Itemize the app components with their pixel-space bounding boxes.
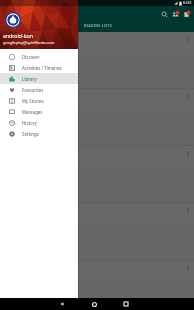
button[interactable]: Recent apps <box>120 298 132 310</box>
button[interactable] <box>0 146 194 203</box>
staticText: READING LISTS <box>84 23 112 28</box>
button[interactable] <box>0 32 194 89</box>
button[interactable]: History <box>0 117 78 128</box>
staticText: Activities / Timeline <box>22 65 62 71</box>
button[interactable]: Notifications <box>181 9 192 20</box>
staticText: Library <box>22 76 37 82</box>
button[interactable] <box>0 260 194 310</box>
staticText: History <box>22 120 37 126</box>
button[interactable]: Settings <box>0 128 78 139</box>
button[interactable]: Activities / Timeline <box>0 62 78 73</box>
button[interactable]: Search <box>159 9 170 20</box>
button[interactable]: Library <box>0 73 78 84</box>
button[interactable]: People <box>170 9 181 20</box>
staticText: Messages <box>22 109 43 115</box>
button[interactable] <box>0 89 194 146</box>
staticText: googleplay@spiritfanta.com <box>3 40 55 45</box>
button[interactable]: Messages <box>0 106 78 117</box>
staticText: Favourites <box>22 87 44 93</box>
staticText: Discover <box>22 54 40 60</box>
staticText: 6:03 <box>183 0 192 6</box>
button[interactable]: My Stories <box>0 95 78 106</box>
button[interactable]: Back <box>56 298 68 310</box>
staticText: Settings <box>22 131 39 137</box>
button[interactable]: Home <box>88 298 100 310</box>
button[interactable]: Favourites <box>0 84 78 95</box>
staticText: My Stories <box>22 98 44 104</box>
staticText: android-kun <box>3 32 33 39</box>
button[interactable] <box>0 203 194 260</box>
button[interactable]: Discover <box>0 51 78 62</box>
